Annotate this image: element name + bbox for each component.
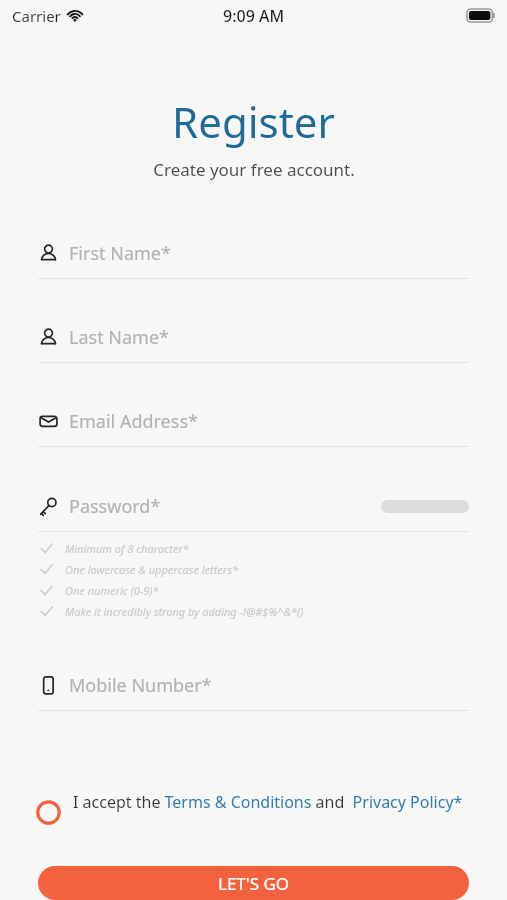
staticText: 9:09 AM: [223, 5, 285, 27]
staticText: Minimum of 8 character*: [65, 541, 189, 556]
other: Accept terms and conditions: [34, 798, 62, 826]
staticText: Mobile Number*: [69, 673, 212, 698]
button[interactable]: Mobile Number*: [38, 666, 469, 711]
button[interactable]: Email Address*: [38, 402, 469, 447]
staticText: Carrier: [12, 6, 61, 26]
button[interactable]: Accept terms and conditions: [34, 791, 463, 826]
staticText: Make it incredibly strong by adding -!@#…: [65, 604, 304, 619]
button[interactable]: Last Name*: [38, 318, 469, 363]
staticText: First Name*: [69, 241, 171, 266]
staticText: Password*: [69, 494, 161, 519]
staticText: Last Name*: [69, 325, 170, 350]
staticText: One lowercase & uppercase letters*: [65, 562, 239, 577]
staticText: I accept the Terms & Conditions and Priv…: [73, 791, 463, 813]
staticText: One numeric (0-9)*: [65, 583, 159, 598]
button[interactable]: LET'S GO: [38, 866, 469, 900]
staticText: LET'S GO: [218, 872, 290, 895]
staticText: Create your free account.: [153, 158, 355, 181]
staticText: Register: [172, 93, 335, 150]
staticText: Email Address*: [69, 409, 198, 434]
button[interactable]: First Name*: [38, 234, 469, 279]
button[interactable]: Password*: [38, 487, 469, 532]
